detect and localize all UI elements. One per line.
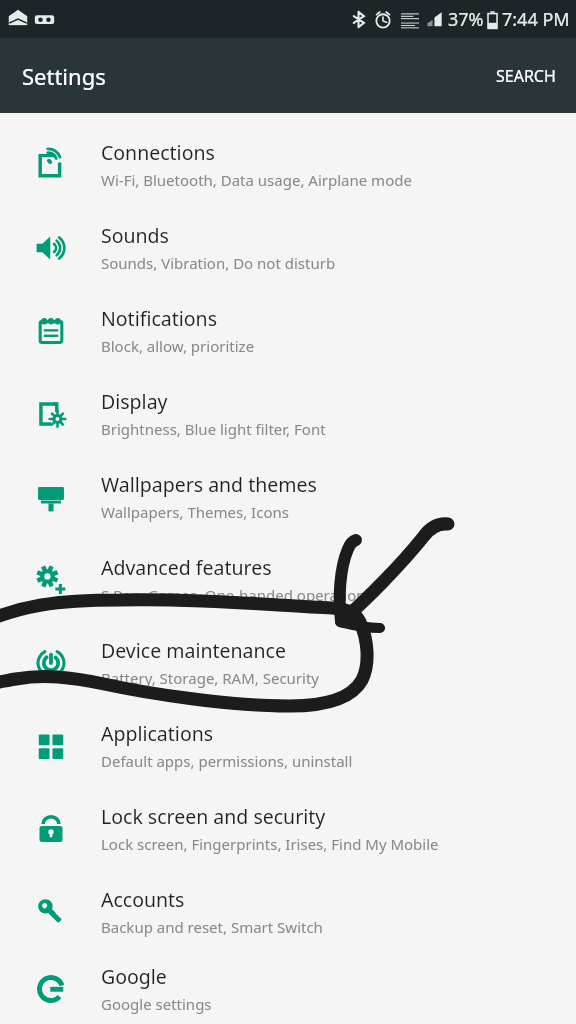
staticText: Lock screen, Fingerprints, Irises, Find … — [101, 834, 439, 854]
staticText: 37% — [448, 7, 484, 32]
button[interactable]: Device maintenance — [0, 621, 576, 704]
staticText: Wallpapers and themes — [101, 471, 317, 498]
staticText: Wi-Fi, Bluetooth, Data usage, Airplane m… — [101, 170, 412, 190]
staticText: Default apps, permissions, uninstall — [101, 751, 353, 771]
staticText: Display — [101, 388, 168, 415]
button[interactable]: Connections — [0, 123, 576, 206]
button[interactable]: Accounts — [0, 870, 576, 953]
button[interactable]: Advanced features — [0, 538, 576, 621]
staticText: Sounds, Vibration, Do not disturb — [101, 253, 336, 273]
button[interactable]: Wallpapers and themes — [0, 455, 576, 538]
staticText: Google settings — [101, 994, 212, 1014]
button[interactable]: Display — [0, 372, 576, 455]
staticText: Connections — [101, 139, 215, 166]
button[interactable]: Google — [0, 953, 576, 1024]
staticText: Lock screen and security — [101, 803, 326, 830]
staticText: Google — [101, 963, 167, 990]
staticText: 7:44 PM — [502, 7, 570, 32]
staticText: Accounts — [101, 886, 185, 913]
staticText: SEARCH — [496, 65, 556, 87]
staticText: Advanced features — [101, 554, 272, 581]
staticText: Notifications — [101, 305, 217, 332]
staticText: Battery, Storage, RAM, Security — [101, 668, 319, 688]
staticText: Backup and reset, Smart Switch — [101, 917, 323, 937]
staticText: Applications — [101, 720, 214, 747]
staticText: Device maintenance — [101, 637, 286, 664]
staticText: Block, allow, prioritize — [101, 336, 255, 356]
staticText: Settings — [22, 61, 106, 91]
staticText: S Pen, Games, One-handed operation — [101, 585, 366, 605]
button[interactable]: Applications — [0, 704, 576, 787]
button[interactable]: SEARCH — [476, 51, 576, 101]
staticText: Sounds — [101, 222, 169, 249]
button[interactable]: Lock screen and security — [0, 787, 576, 870]
button[interactable]: Sounds — [0, 206, 576, 289]
button[interactable]: Notifications — [0, 289, 576, 372]
staticText: Brightness, Blue light filter, Font — [101, 419, 326, 439]
staticText: Wallpapers, Themes, Icons — [101, 502, 289, 522]
